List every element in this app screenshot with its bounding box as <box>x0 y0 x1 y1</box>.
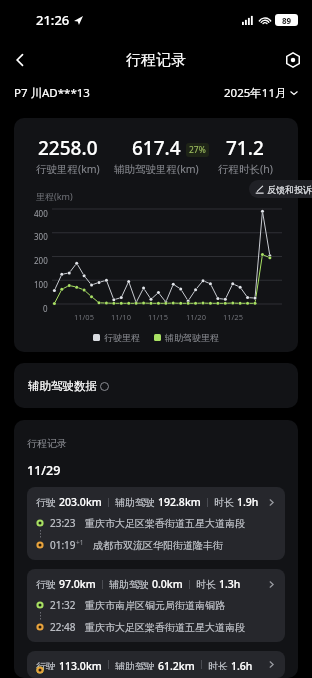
staticText: 71.2 <box>226 135 264 161</box>
button[interactable]: 反馈和投诉 <box>249 180 312 198</box>
staticText: 行驶 <box>36 495 59 509</box>
staticText: 2258.0 <box>38 135 98 161</box>
staticText: 重庆市大足区棠香街道五星大道南段 <box>85 621 245 634</box>
staticText: 11/15 <box>148 312 168 322</box>
staticText: 辅助驾驶数据 <box>28 379 97 393</box>
staticText: 617.4 <box>132 135 181 161</box>
staticText: 成都市双流区华阳街道隆丰街 <box>93 539 223 552</box>
staticText: 11/29 <box>27 462 61 479</box>
staticText: 行驶 <box>36 577 59 591</box>
staticText: 61.2km <box>158 659 195 670</box>
staticText: 时长 <box>208 659 231 670</box>
button[interactable]: 行驶 <box>27 569 285 642</box>
staticText: 113.0km <box>59 659 102 670</box>
staticText: 300 <box>34 231 48 242</box>
staticText: 0.0km <box>152 577 183 591</box>
staticText: 23:23 <box>50 516 76 530</box>
button[interactable]: 2025年11月 <box>224 85 298 101</box>
button[interactable]: 行驶 <box>27 487 285 560</box>
staticText: 192.8km <box>158 495 201 509</box>
staticText: 行程时长(h) <box>218 162 273 176</box>
staticText: P7 川AD***13 <box>14 85 90 101</box>
staticText: 11/25 <box>223 312 243 322</box>
staticText: 400 <box>34 208 48 219</box>
staticText: 89 <box>282 15 292 26</box>
staticText: 反馈和投诉 <box>267 184 312 195</box>
staticText: 100 <box>34 279 48 290</box>
staticText: 21:26 <box>36 11 70 29</box>
staticText: 2025年11月 <box>224 85 287 101</box>
staticText: 辅助驾驶 <box>109 577 152 591</box>
button[interactable]: Settings <box>274 41 312 79</box>
staticText: 重庆市南岸区铜元局街道南铜路 <box>85 599 225 612</box>
staticText: 27% <box>189 144 206 156</box>
staticText: 97.0km <box>59 577 96 591</box>
staticText: 重庆市大足区棠香街道五星大道南段 <box>85 517 245 530</box>
button[interactable]: 行驶 <box>27 651 285 678</box>
staticText: 1.6h <box>231 659 253 670</box>
staticText: 辅助驾驶 <box>115 659 158 670</box>
staticText: 21:32 <box>50 598 76 612</box>
staticText: 200 <box>34 255 48 266</box>
staticText: 里程(km) <box>36 190 73 202</box>
staticText: +1 <box>76 538 84 547</box>
staticText: 11/10 <box>111 312 131 322</box>
staticText: 时长 <box>214 495 237 509</box>
staticText: 辅助驾驶 <box>115 495 158 509</box>
staticText: 11/20 <box>186 312 206 322</box>
staticText: 11/05 <box>74 312 94 322</box>
staticText: 1.3h <box>219 577 241 591</box>
staticText: 0 <box>43 303 48 314</box>
staticText: 01:19 <box>50 538 76 552</box>
button[interactable]: 辅助驾驶数据 <box>14 363 298 408</box>
staticText: 行驶里程 <box>104 332 140 343</box>
staticText: 203.0km <box>59 495 102 509</box>
staticText: 时长 <box>196 577 219 591</box>
staticText: 行程记录 <box>27 437 67 450</box>
button[interactable]: Back <box>0 40 40 80</box>
staticText: 行驶 <box>36 659 59 670</box>
staticText: 行程记录 <box>126 51 186 70</box>
staticText: 22:48 <box>50 620 76 634</box>
staticText: 辅助驾驶里程(km) <box>114 162 199 176</box>
staticText: 1.9h <box>237 495 259 509</box>
staticText: 行驶里程(km) <box>36 162 100 176</box>
staticText: 辅助驾驶里程 <box>165 332 219 343</box>
